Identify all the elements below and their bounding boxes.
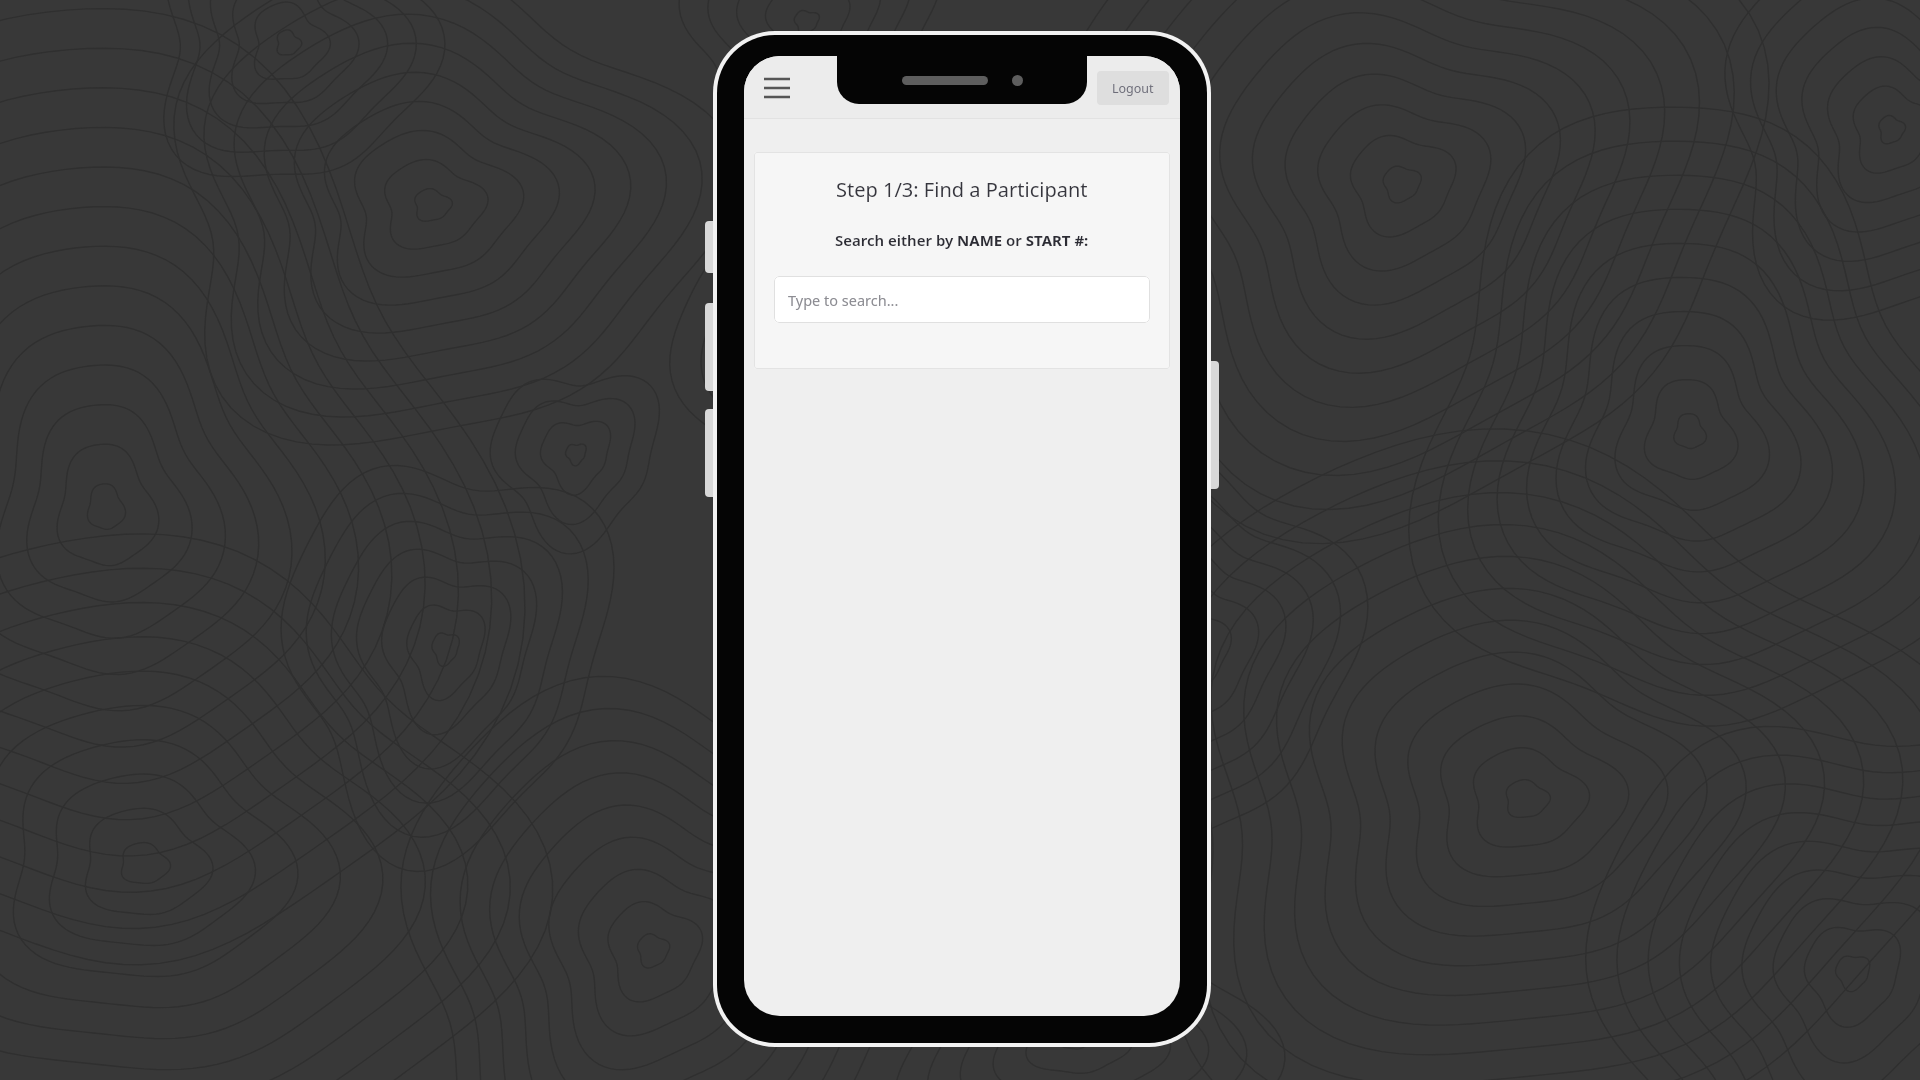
button[interactable]: Open navigation menu bbox=[755, 68, 799, 108]
staticText: Logout bbox=[1112, 80, 1154, 97]
staticText: Type to search... bbox=[788, 290, 899, 310]
button[interactable]: Logout bbox=[1097, 71, 1169, 105]
staticText: Step 1/3: Find a Participant bbox=[836, 176, 1088, 203]
staticText: Search either by NAME or START #: bbox=[835, 230, 1089, 250]
button[interactable]: Type to search... bbox=[774, 276, 1150, 323]
